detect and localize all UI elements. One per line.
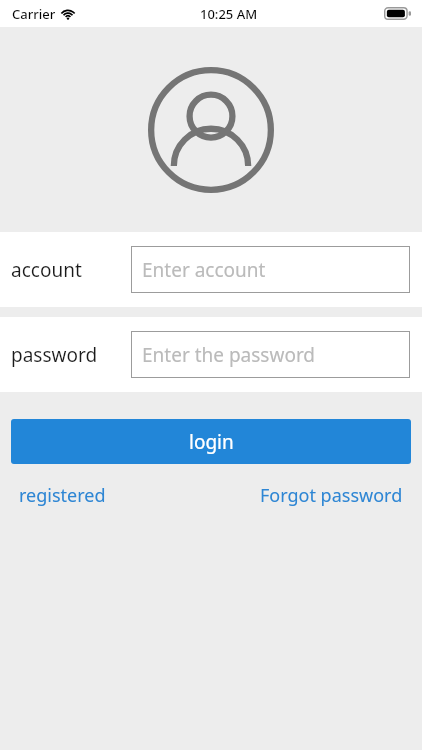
other: User avatar bbox=[148, 67, 274, 193]
staticText: Carrier bbox=[12, 5, 56, 23]
staticText: registered bbox=[19, 483, 106, 508]
button[interactable]: registered bbox=[17, 479, 108, 512]
staticText: Enter the password bbox=[142, 342, 316, 368]
button[interactable]: Forgot password bbox=[258, 479, 405, 512]
button[interactable]: password bbox=[0, 317, 422, 392]
staticText: Enter account bbox=[142, 257, 266, 283]
staticText: password bbox=[11, 342, 98, 368]
staticText: 10:25 AM bbox=[200, 5, 258, 23]
staticText: account bbox=[11, 257, 82, 283]
button[interactable]: account bbox=[0, 232, 422, 307]
staticText: Forgot password bbox=[260, 483, 403, 508]
button[interactable]: login bbox=[11, 419, 411, 464]
staticText: login bbox=[189, 429, 234, 455]
